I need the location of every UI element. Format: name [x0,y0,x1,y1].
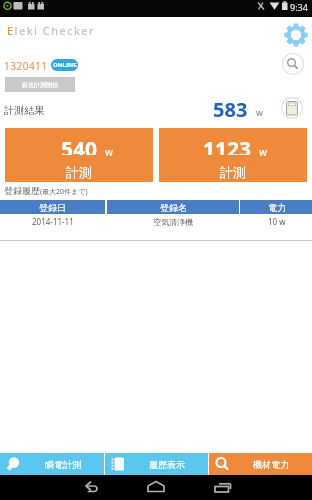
staticText: 履歴表示 [149,459,185,470]
staticText: 1320411 [4,59,48,73]
staticText: 1123 [203,135,252,155]
staticText: 登録履歴(最大20件まで) [4,185,88,196]
button[interactable]: 新規計測開始 [5,77,75,92]
staticText: Eleki Checker [7,23,96,38]
staticText: 登録名 [160,202,187,213]
staticText: 瞬電計測 [45,459,81,470]
staticText: 583 [213,96,248,120]
button[interactable] [281,97,303,119]
staticText: w [259,145,267,159]
staticText: 540 [61,135,98,155]
staticText: 計測 [220,164,246,180]
button[interactable] [284,23,308,47]
staticText: 10 w [268,216,286,227]
button[interactable]: 履歴表示 [105,453,208,475]
button[interactable]: 機材電力 [209,453,312,475]
staticText: ONLINE [53,61,77,69]
staticText: 計測結果 [4,104,44,117]
staticText: 機材電力 [253,459,289,470]
button[interactable]: 1123 [159,128,307,182]
staticText: 空気清浄機 [153,217,193,227]
staticText: 計測 [66,164,92,180]
button[interactable]: ONLINE [51,59,78,71]
button[interactable]: 2014-11-11 [0,214,105,229]
button[interactable]: 空気清浄機 [107,214,239,229]
staticText: w [105,145,113,159]
button[interactable]: 瞬電計測 [0,453,104,475]
staticText: 2014-11-11 [32,216,74,227]
staticText: 新規計測開始 [22,81,58,89]
staticText: 9:34 [290,1,308,13]
staticText: 電力 [268,202,286,213]
button[interactable] [282,53,304,75]
button[interactable]: 10 w [240,214,312,229]
button[interactable]: 540 [5,128,153,182]
staticText: w [256,106,264,118]
staticText: 登録日 [39,202,66,213]
